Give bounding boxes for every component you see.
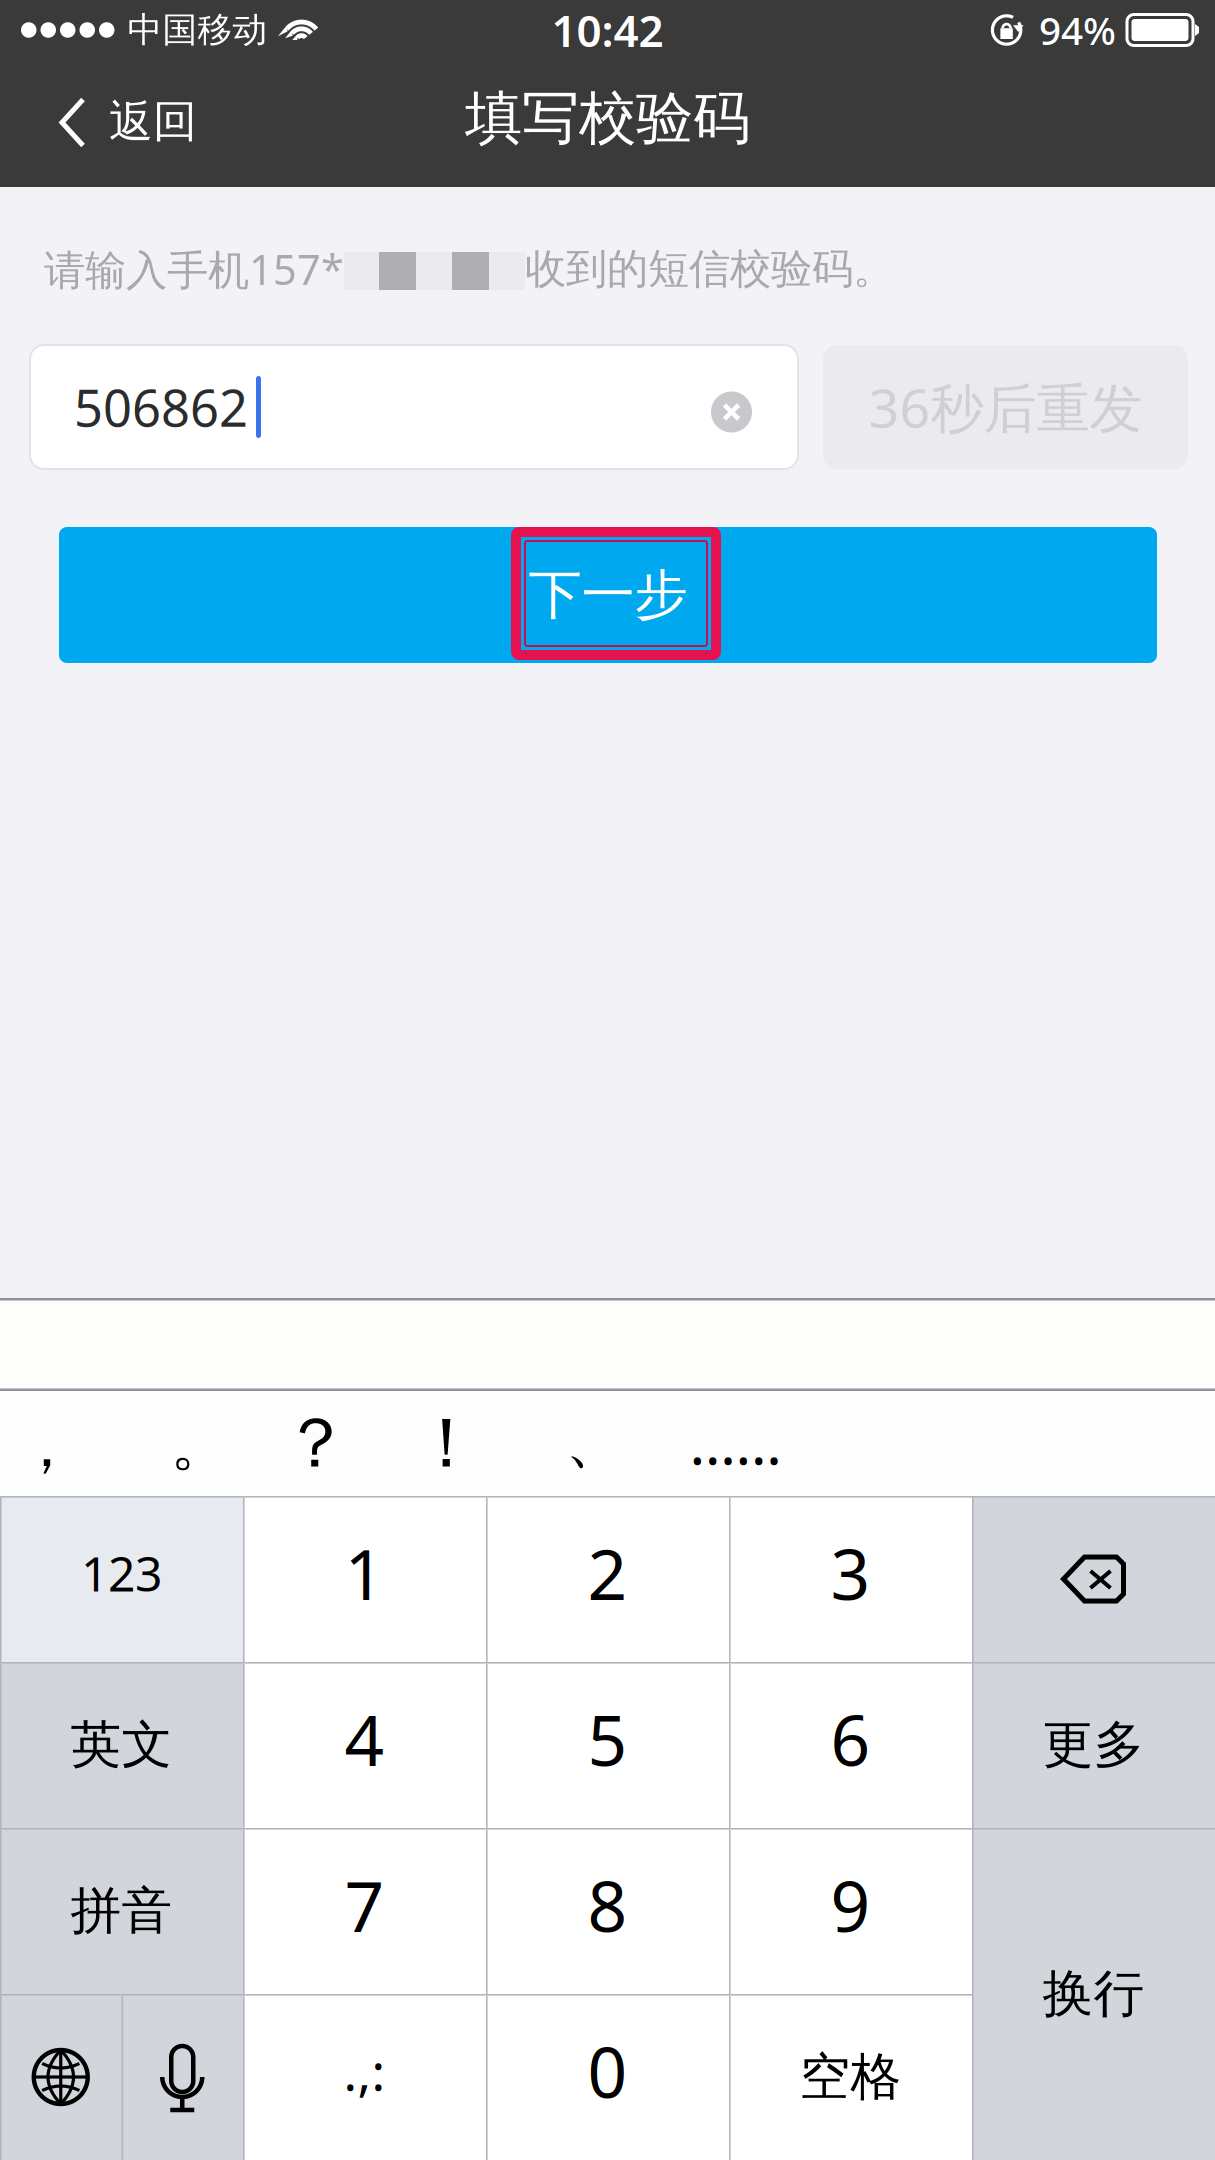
button[interactable]: 8 [486, 1828, 729, 1994]
staticText: 94% [1039, 4, 1116, 56]
button[interactable]: 4 [243, 1662, 486, 1828]
staticText: 3 [830, 1527, 870, 1619]
button[interactable]: Backspace [972, 1496, 1215, 1662]
button[interactable]: 下一步 [59, 527, 1157, 663]
button[interactable]: ， [0, 1394, 107, 1499]
staticText: .,: [343, 2037, 385, 2105]
button[interactable]: 返回 [0, 60, 223, 187]
staticText: 6 [830, 1693, 870, 1785]
button[interactable]: 换行 [972, 1828, 1215, 2160]
staticText: 返回 [109, 94, 197, 148]
staticText: 9 [830, 1859, 870, 1951]
staticText: 空格 [799, 2046, 901, 2108]
button[interactable]: 36秒后重发 [823, 345, 1188, 469]
staticText: 下一步 [528, 562, 687, 628]
staticText: …… [689, 1403, 781, 1481]
button[interactable]: 2 [486, 1496, 729, 1662]
staticText: 4 [344, 1693, 384, 1785]
staticText: 拼音 [70, 1880, 172, 1942]
staticText: 506862 [74, 373, 248, 441]
button[interactable]: ？ [256, 1391, 376, 1496]
button[interactable]: 3 [729, 1496, 972, 1662]
staticText: 、 [565, 1405, 624, 1478]
button[interactable]: 、 [535, 1389, 655, 1494]
button[interactable]: 英文 [0, 1662, 243, 1828]
button[interactable]: 123 [0, 1496, 243, 1662]
button[interactable]: …… [675, 1389, 795, 1494]
button[interactable]: Dictation [121, 1994, 243, 2160]
staticText: 8 [587, 1859, 627, 1951]
button[interactable]: Switch keyboard [0, 1994, 121, 2160]
staticText: ！ [412, 1401, 481, 1486]
button[interactable]: 6 [729, 1662, 972, 1828]
staticText: 。 [170, 1408, 229, 1481]
button[interactable]: 0 [486, 1994, 729, 2160]
staticText: 7 [344, 1859, 384, 1951]
button[interactable]: 1 [243, 1496, 486, 1662]
staticText: 英文 [70, 1714, 172, 1776]
button[interactable]: 更多 [972, 1662, 1215, 1828]
staticText: 请输入手机157* [44, 242, 344, 296]
staticText: 36秒后重发 [868, 372, 1142, 442]
staticText: ， [17, 1410, 76, 1483]
button[interactable]: 7 [243, 1828, 486, 1994]
button[interactable]: 拼音 [0, 1828, 243, 1994]
staticText: 2 [587, 1527, 627, 1619]
button[interactable]: ！ [386, 1391, 506, 1496]
staticText: 123 [81, 1541, 162, 1605]
button[interactable]: .,: [243, 1994, 486, 2160]
staticText: 中国移动 [127, 9, 267, 51]
staticText: 10:42 [551, 1, 663, 59]
staticText: 收到的短信校验码。 [525, 244, 894, 294]
staticText: ？ [281, 1401, 350, 1486]
staticText: 换行 [1042, 1963, 1144, 2025]
staticText: 更多 [1042, 1714, 1144, 1776]
staticText: 0 [587, 2025, 627, 2117]
button[interactable]: 空格 [729, 1994, 972, 2160]
button[interactable]: 9 [729, 1828, 972, 1994]
button[interactable]: 。 [140, 1392, 260, 1497]
staticText: 1 [344, 1527, 384, 1619]
staticText: 5 [587, 1693, 627, 1785]
staticText: 填写校验码 [465, 83, 750, 154]
button[interactable]: 5 [486, 1662, 729, 1828]
